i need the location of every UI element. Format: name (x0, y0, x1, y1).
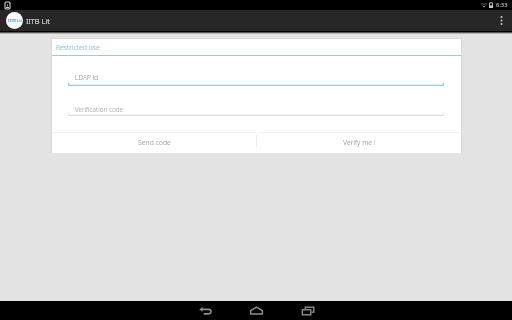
button[interactable]: Send code (52, 133, 256, 152)
staticText: Verify me ! (343, 138, 376, 147)
button[interactable]: Home (231, 301, 282, 320)
button[interactable]: More options (490, 10, 512, 31)
staticText: 6:33 (496, 1, 508, 9)
button[interactable]: Recent apps (282, 301, 333, 320)
staticText: Send code (138, 138, 171, 147)
button[interactable]: Back (180, 301, 231, 320)
staticText: Restricted use (56, 43, 100, 52)
staticText: IITB Lit (8, 18, 22, 23)
staticText: Verification code (75, 105, 124, 114)
staticText: IITB Lit (26, 16, 50, 26)
staticText: LDAP id (75, 73, 99, 82)
button[interactable]: Verify me ! (257, 133, 461, 152)
